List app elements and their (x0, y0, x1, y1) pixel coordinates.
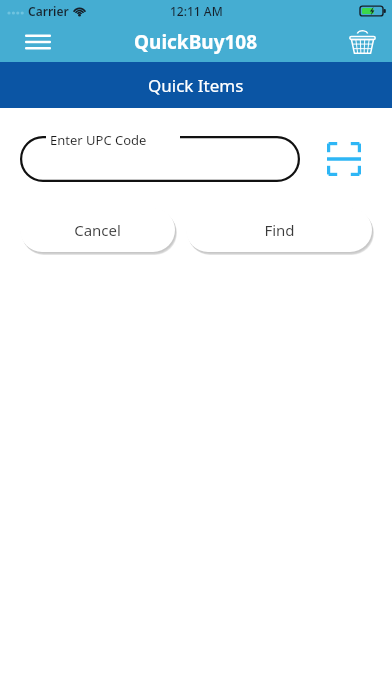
staticText: Enter UPC Code (50, 131, 147, 149)
button[interactable]: Open navigation menu (18, 22, 58, 62)
button[interactable]: Find (186, 208, 372, 252)
staticText: 12:11 AM (170, 3, 223, 19)
button[interactable]: Cancel (20, 208, 175, 252)
button[interactable]: Scan barcode (322, 137, 366, 181)
button[interactable] (20, 136, 300, 182)
staticText: Find (264, 220, 295, 240)
staticText: Quick Items (148, 74, 244, 97)
button[interactable]: Quick Items (0, 62, 392, 108)
staticText: QuickBuy108 (134, 29, 258, 55)
staticText: Cancel (74, 220, 121, 240)
staticText: Carrier (28, 3, 69, 19)
button[interactable]: Shopping basket (342, 22, 382, 62)
